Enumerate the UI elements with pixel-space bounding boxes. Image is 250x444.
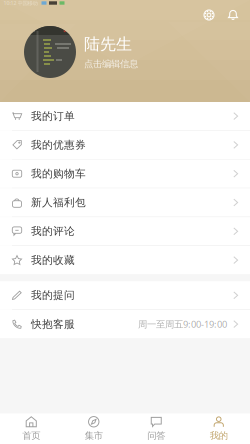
- staticText: 新人福利包: [31, 196, 86, 209]
- staticText: 我的优惠券: [31, 138, 86, 151]
- staticText: 我的收藏: [31, 253, 75, 267]
- staticText: 快抱客服: [31, 317, 75, 331]
- staticText: 我的购物车: [31, 167, 86, 180]
- staticText: 我的评论: [31, 225, 75, 238]
- button[interactable]: 我的购物车: [0, 160, 250, 188]
- button[interactable]: 我的收藏: [0, 246, 250, 274]
- staticText: 问答: [147, 430, 165, 441]
- button[interactable]: 我的: [187, 413, 250, 444]
- button[interactable]: 问答: [125, 413, 187, 444]
- button[interactable]: 我的评论: [0, 217, 250, 245]
- button[interactable]: 我的优惠券: [0, 131, 250, 159]
- button[interactable]: Notifications: [224, 6, 242, 24]
- button[interactable]: 陆先生: [24, 26, 138, 78]
- button[interactable]: 集市: [62, 413, 125, 444]
- staticText: 陆先生: [84, 34, 132, 54]
- staticText: 首页: [22, 430, 40, 441]
- staticText: 10:12 中国移动: [3, 0, 37, 7]
- staticText: 集市: [85, 430, 103, 441]
- staticText: 我的: [210, 430, 228, 441]
- button[interactable]: Settings: [200, 6, 218, 24]
- staticText: 我的订单: [31, 109, 75, 123]
- button[interactable]: 新人福利包: [0, 188, 250, 217]
- button[interactable]: 我的提问: [0, 281, 250, 309]
- button[interactable]: 首页: [0, 413, 62, 444]
- button[interactable]: 我的订单: [0, 102, 250, 130]
- staticText: 我的提问: [31, 289, 75, 302]
- staticText: 周一至周五9:00-19:00: [138, 318, 227, 330]
- staticText: 点击编辑信息: [84, 58, 138, 70]
- button[interactable]: 快抱客服: [0, 310, 250, 338]
